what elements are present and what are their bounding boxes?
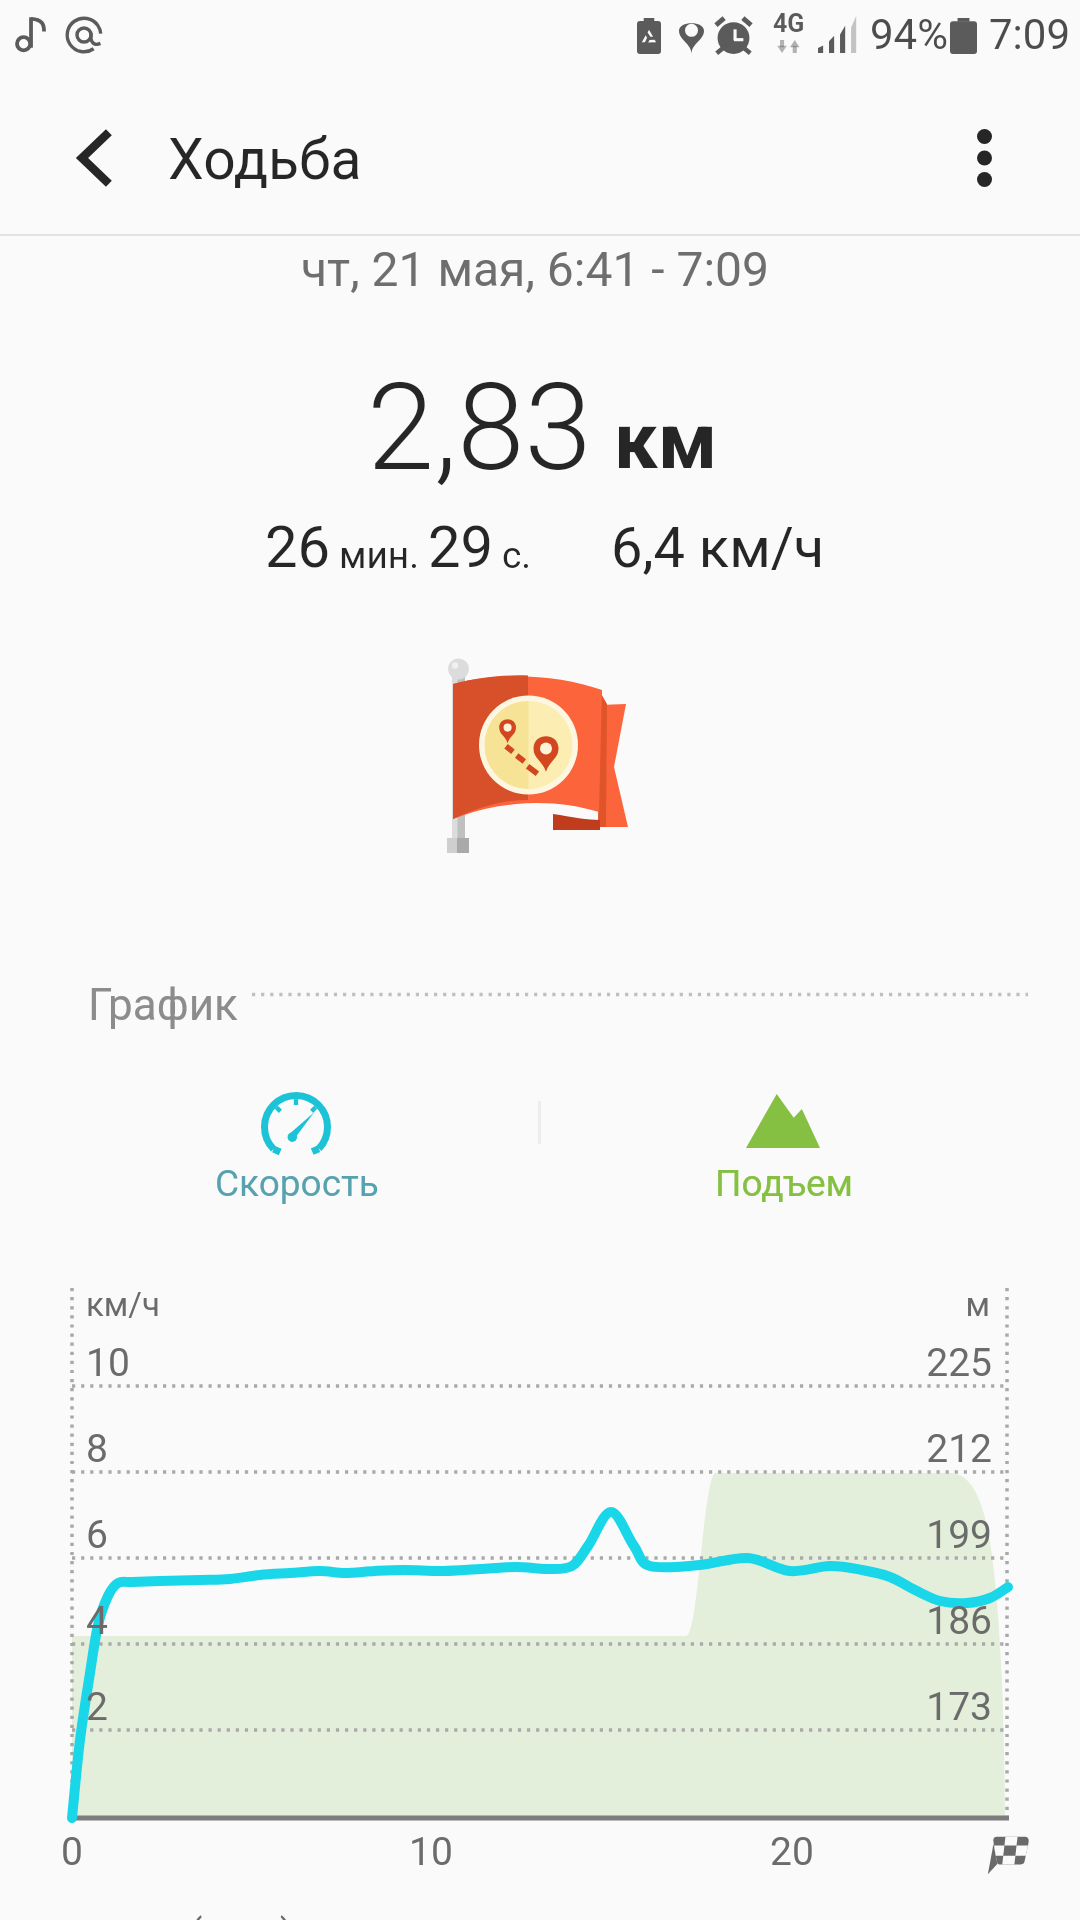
staticText: 6 bbox=[86, 1512, 108, 1558]
staticText: 225 bbox=[820, 1340, 992, 1386]
staticText: чт, 21 мая, 6:41 - 7:09 bbox=[301, 241, 769, 297]
staticText: 199 bbox=[820, 1512, 992, 1558]
staticText: 26 bbox=[265, 513, 331, 581]
staticText: Подъем bbox=[715, 1162, 854, 1205]
button[interactable]: Скорость bbox=[150, 1075, 442, 1215]
staticText: График bbox=[88, 979, 238, 1031]
staticText: 4 bbox=[86, 1598, 108, 1644]
staticText: 0 bbox=[2, 1829, 142, 1875]
staticText: 8 bbox=[86, 1426, 108, 1472]
staticText: Скорость bbox=[215, 1162, 379, 1205]
staticText: 10 bbox=[361, 1829, 501, 1875]
staticText: 4G bbox=[773, 9, 805, 38]
staticText: 212 bbox=[820, 1426, 992, 1472]
staticText: с. bbox=[502, 534, 532, 577]
staticText: 94% bbox=[870, 10, 948, 59]
staticText: мин. bbox=[339, 534, 419, 577]
button[interactable]: Back bbox=[46, 108, 146, 208]
staticText: 2,83 bbox=[367, 357, 592, 499]
staticText: (мин.) bbox=[190, 1912, 293, 1920]
staticText: 7:09 bbox=[989, 10, 1070, 59]
staticText: 6,4 км/ч bbox=[611, 515, 825, 581]
staticText: Ходьба bbox=[168, 126, 362, 193]
button[interactable]: More options bbox=[934, 108, 1034, 208]
staticText: 10 bbox=[86, 1340, 130, 1386]
staticText: 173 bbox=[820, 1684, 992, 1730]
staticText: км/ч bbox=[86, 1285, 160, 1324]
button[interactable]: Подъем bbox=[637, 1075, 929, 1215]
staticText: 29 bbox=[428, 513, 494, 581]
staticText: м bbox=[820, 1285, 990, 1324]
staticText: 2 bbox=[86, 1684, 108, 1730]
staticText: км bbox=[614, 396, 718, 487]
staticText: 186 bbox=[820, 1598, 992, 1644]
staticText: 20 bbox=[722, 1829, 862, 1875]
